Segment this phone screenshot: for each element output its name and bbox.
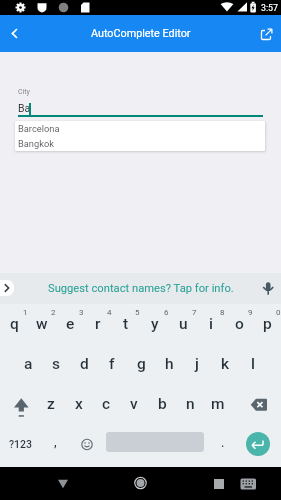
staticText: 7 [192,308,197,317]
button[interactable]: f [98,344,126,384]
button[interactable]: s [42,344,70,384]
button[interactable]: Barcelona [15,121,265,136]
staticText: d [80,355,89,373]
button[interactable]: g [127,344,155,384]
staticText: 0 [276,308,281,317]
staticText: j [195,355,199,373]
button[interactable]: ?123 [6,424,35,464]
button[interactable]: y [141,304,169,344]
staticText: AutoComplete Editor [91,27,191,40]
staticText: z [47,395,55,413]
button[interactable]: u [169,304,197,344]
staticText: i [209,315,213,333]
button[interactable] [0,280,14,296]
staticText: 6 [164,308,169,317]
staticText: u [179,315,188,333]
staticText: . [221,436,225,450]
button[interactable]: o [225,304,253,344]
staticText: 3 [79,308,84,317]
staticText: y [151,315,159,333]
staticText: g [137,355,146,373]
button[interactable]: x [65,384,93,424]
staticText: r [95,315,101,333]
staticText: Barcelona [18,123,60,134]
button[interactable] [0,15,30,52]
button[interactable] [204,468,234,498]
button[interactable]: c [92,384,120,424]
button[interactable] [2,384,32,424]
staticText: c [102,395,111,413]
staticText: Bangkok [18,138,54,149]
staticText: p [263,315,272,333]
button[interactable]: Suggest contact names? Tap for info. [0,273,281,304]
staticText: l [251,355,255,373]
button[interactable]: j [183,344,211,384]
button[interactable]: r [84,304,112,344]
staticText: 8 [220,308,225,317]
staticText: f [109,355,115,373]
button[interactable]: Ba [18,101,78,115]
staticText: x [75,395,83,413]
button[interactable]: Bangkok [15,136,265,151]
staticText: , [54,436,57,450]
staticText: ?123 [9,438,33,450]
button[interactable]: m [204,384,232,424]
button[interactable]: e [56,304,84,344]
button[interactable] [242,384,274,424]
button[interactable] [252,15,281,52]
button[interactable]: h [155,344,183,384]
button[interactable]: t [112,304,140,344]
staticText: v [130,395,138,413]
button[interactable]: v [120,384,148,424]
staticText: City [18,88,30,96]
staticText: s [52,355,61,373]
button[interactable]: z [37,384,65,424]
button[interactable]: p [253,304,281,344]
staticText: w [36,315,48,333]
staticText: 3:57 [261,3,278,13]
button[interactable] [233,468,263,498]
staticText: n [186,395,195,413]
button[interactable] [48,468,78,498]
button[interactable]: k [211,344,239,384]
button[interactable]: i [197,304,225,344]
staticText: t [123,315,129,333]
button[interactable]: q [0,304,28,344]
staticText: a [24,355,33,373]
staticText: 1 [23,308,28,317]
button[interactable]: b [148,384,176,424]
staticText: k [221,355,230,373]
button[interactable]: w [28,304,56,344]
staticText: 9 [248,308,253,317]
button[interactable]: a [14,344,42,384]
staticText: m [211,395,225,413]
staticText: 2 [51,308,56,317]
button[interactable]: . [213,424,233,464]
button[interactable] [125,468,155,498]
staticText: Ba [18,102,31,114]
staticText: Suggest contact names? Tap for info. [48,282,234,295]
staticText: o [235,315,244,333]
button[interactable] [256,277,280,301]
button[interactable] [77,424,97,464]
staticText: q [10,315,19,333]
staticText: e [66,315,75,333]
staticText: 5 [135,308,140,317]
staticText: 4 [107,308,112,317]
button[interactable]: l [239,344,267,384]
button[interactable]: n [176,384,204,424]
staticText: b [158,395,167,413]
button[interactable] [246,432,270,456]
staticText: h [165,355,174,373]
button[interactable]: , [45,424,65,464]
button[interactable]: d [70,344,98,384]
